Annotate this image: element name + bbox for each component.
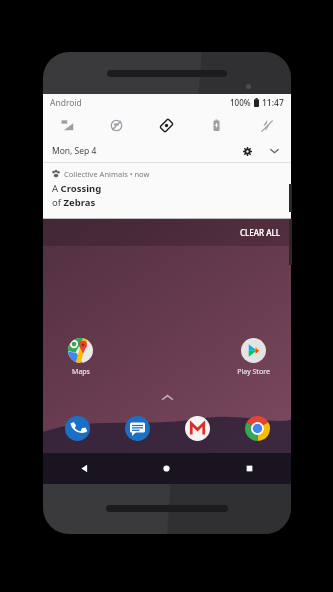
- staticText: CLEAR ALL: [240, 227, 280, 238]
- button[interactable]: Home: [125, 453, 208, 484]
- button[interactable]: Phone: [60, 411, 94, 445]
- staticText: Android: [50, 97, 82, 109]
- button[interactable]: Settings: [238, 142, 256, 160]
- button[interactable]: Recents: [208, 453, 291, 484]
- button[interactable]: Gmail: [180, 411, 214, 445]
- button[interactable]: Back: [43, 453, 125, 484]
- button[interactable]: Collective Animals • now: [43, 163, 291, 218]
- button[interactable]: Maps: [52, 335, 109, 380]
- staticText: Mon, Sep 4: [52, 145, 97, 157]
- button[interactable]: Messages: [120, 411, 154, 445]
- staticText: Collective Animals • now: [64, 169, 150, 179]
- button[interactable]: Flashlight: [241, 111, 291, 140]
- button[interactable]: Auto rotate: [141, 111, 191, 140]
- button[interactable]: Mobile data: [43, 111, 92, 140]
- staticText: Maps: [72, 367, 90, 377]
- button[interactable]: Play Store: [224, 335, 282, 380]
- button[interactable]: Battery saver: [191, 111, 241, 140]
- button[interactable]: CLEAR ALL: [229, 220, 291, 245]
- staticText: Play Store: [237, 367, 270, 377]
- staticText: 100%: [230, 97, 251, 108]
- button[interactable]: Chrome: [240, 411, 274, 445]
- button[interactable]: Do not disturb: [92, 111, 141, 140]
- button[interactable]: Open app drawer: [43, 391, 291, 404]
- staticText: 11:47: [262, 97, 284, 109]
- staticText: of Zebras: [52, 196, 96, 209]
- staticText: A Crossing: [52, 182, 102, 195]
- button[interactable]: Expand quick settings: [265, 142, 283, 160]
